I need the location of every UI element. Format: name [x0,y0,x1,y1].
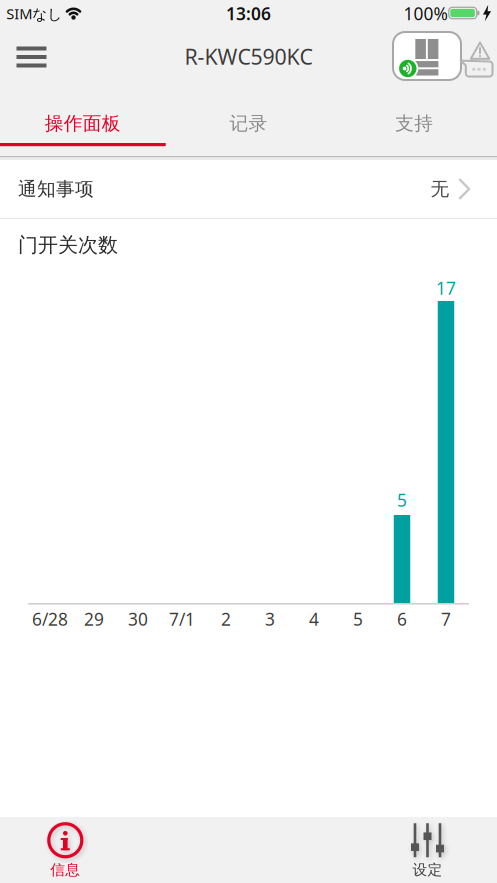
staticText: 记录 [229,112,267,135]
button[interactable]: 支持 [331,100,497,147]
staticText: 无 [430,177,449,200]
staticText: 5 [397,488,407,511]
staticText: R-KWC590KC [184,42,312,71]
button[interactable]: 信息 [20,820,110,882]
button[interactable]: 操作面板 [0,100,166,147]
staticText: 操作面板 [45,112,121,135]
staticText: 通知事项 [18,177,94,200]
button[interactable]: 设定 [382,820,472,882]
staticText: 7/1 [169,607,195,630]
staticText: 100% [403,2,447,25]
staticText: 4 [309,607,319,630]
staticText: 7 [441,607,451,630]
staticText: 5 [353,607,363,630]
button[interactable] [9,39,53,75]
button[interactable] [459,38,495,80]
staticText: 29 [84,607,104,630]
staticText: 6/28 [32,607,68,630]
staticText: 3 [265,607,275,630]
staticText: 设定 [412,861,442,879]
button[interactable]: 通知事项 [0,160,497,218]
staticText: 门开关次数 [18,233,118,257]
button[interactable]: 记录 [166,100,331,147]
staticText: 17 [436,276,456,299]
staticText: SIMなし [6,4,62,23]
button[interactable] [393,32,461,80]
staticText: 13:06 [226,2,271,25]
staticText: 6 [397,607,407,630]
staticText: 30 [128,607,148,630]
staticText: 2 [221,607,231,630]
staticText: 信息 [50,861,80,879]
staticText: 支持 [395,112,433,135]
